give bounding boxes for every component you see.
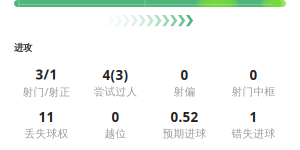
button[interactable]: 0 — [81, 108, 150, 140]
button[interactable]: 0.52 — [150, 108, 219, 140]
button[interactable]: 11 — [12, 108, 81, 140]
staticText: 11 — [38, 108, 54, 126]
staticText: 预期进球 — [162, 127, 206, 140]
staticText: 射偏 — [173, 85, 195, 98]
staticText: 0 — [111, 108, 119, 126]
staticText: 进攻 — [14, 42, 32, 53]
staticText: 射门/射正 — [22, 85, 70, 99]
button[interactable]: 4(3) — [81, 66, 150, 98]
staticText: 3/1 — [35, 65, 57, 83]
staticText: 0 — [249, 66, 257, 84]
button[interactable]: 3/1 — [12, 65, 81, 99]
staticText: 4(3) — [102, 66, 128, 84]
button[interactable]: 1 — [219, 108, 288, 140]
staticText: 尝试过人 — [93, 85, 137, 98]
staticText: 射门中框 — [231, 85, 275, 98]
staticText: 错失进球 — [231, 127, 275, 140]
button[interactable]: 0 — [150, 66, 219, 98]
staticText: 丢失球权 — [24, 127, 68, 140]
staticText: 0 — [180, 66, 188, 84]
staticText: 越位 — [104, 127, 126, 140]
staticText: 1 — [249, 108, 257, 126]
button[interactable]: 0 — [219, 66, 288, 98]
staticText: 0.52 — [170, 108, 198, 126]
